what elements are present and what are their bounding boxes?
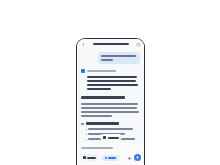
button[interactable]: Add attachment (126, 155, 132, 161)
button[interactable] (102, 155, 119, 161)
button[interactable] (100, 134, 122, 140)
other: Search results (81, 69, 85, 73)
button[interactable] (77, 143, 144, 152)
button[interactable]: Send (134, 154, 141, 161)
button[interactable]: New chat (135, 41, 141, 47)
button[interactable] (98, 52, 140, 64)
button[interactable] (80, 154, 99, 161)
button[interactable]: Back (80, 41, 86, 47)
